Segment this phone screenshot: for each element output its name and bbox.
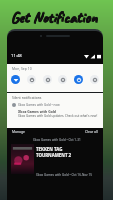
staticText: Xbox Games with Gold (18, 109, 56, 114)
staticText: Get Notification (11, 8, 98, 28)
staticText: Xbox Games with Gold updates. Check out … (18, 114, 98, 118)
staticText: Get Notification (10, 8, 97, 28)
staticText: Xbox Games with Gold • Oct 1-31 (33, 138, 81, 142)
staticText: Get Notification (10, 7, 97, 27)
staticText: Get Notification (11, 8, 98, 28)
button[interactable]: Quick setting 1 (27, 75, 36, 84)
staticText: Get Notification (11, 7, 98, 27)
staticText: Get Notification (10, 8, 97, 28)
staticText: 11:48 (11, 53, 22, 59)
staticText: TOURNAMENT 2 (36, 152, 72, 158)
staticText: Get Notification (11, 8, 98, 28)
staticText: Get Notification (11, 8, 98, 28)
staticText: Silent notifications (12, 95, 42, 100)
button[interactable]: Quick setting 3 (58, 75, 67, 84)
staticText: TEKKEN TAG (36, 146, 63, 152)
staticText: Xbox Games with Gold • now (18, 103, 60, 107)
button[interactable]: Clear all (85, 129, 98, 134)
button[interactable]: Quick setting 4 (74, 75, 83, 84)
staticText: Xbox Games with Gold • Oct 16-Nov 15 (36, 173, 92, 177)
button[interactable]: Manage (12, 129, 25, 134)
button[interactable]: Quick setting 0 (11, 75, 20, 84)
button[interactable]: Quick setting 5 (90, 75, 99, 84)
button[interactable]: Xbox Games with Gold • Oct 1-31 (7, 138, 103, 177)
staticText: Get Notification (11, 7, 98, 27)
button[interactable]: Quick setting 2 (43, 75, 52, 84)
staticText: Mon, Sep 10 (12, 66, 32, 71)
